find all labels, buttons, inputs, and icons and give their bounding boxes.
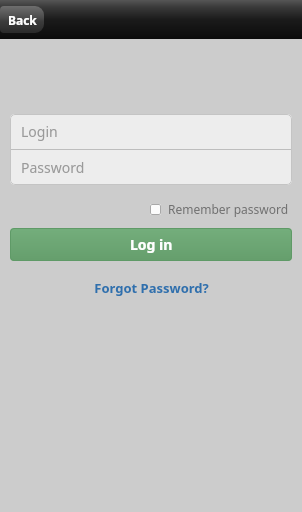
staticText: Back (8, 12, 37, 28)
button[interactable]: Back (0, 6, 44, 33)
button[interactable]: Log in (10, 228, 292, 261)
staticText: Log in (130, 235, 173, 254)
staticText: Login (21, 122, 58, 141)
button[interactable]: Forgot Password? (86, 276, 217, 300)
staticText: Forgot Password? (94, 279, 209, 297)
button[interactable]: Login (10, 114, 292, 149)
staticText: Remember password (168, 201, 289, 217)
button[interactable]: Remember password (148, 199, 291, 219)
button[interactable]: Password (10, 150, 292, 185)
staticText: Password (21, 158, 85, 177)
